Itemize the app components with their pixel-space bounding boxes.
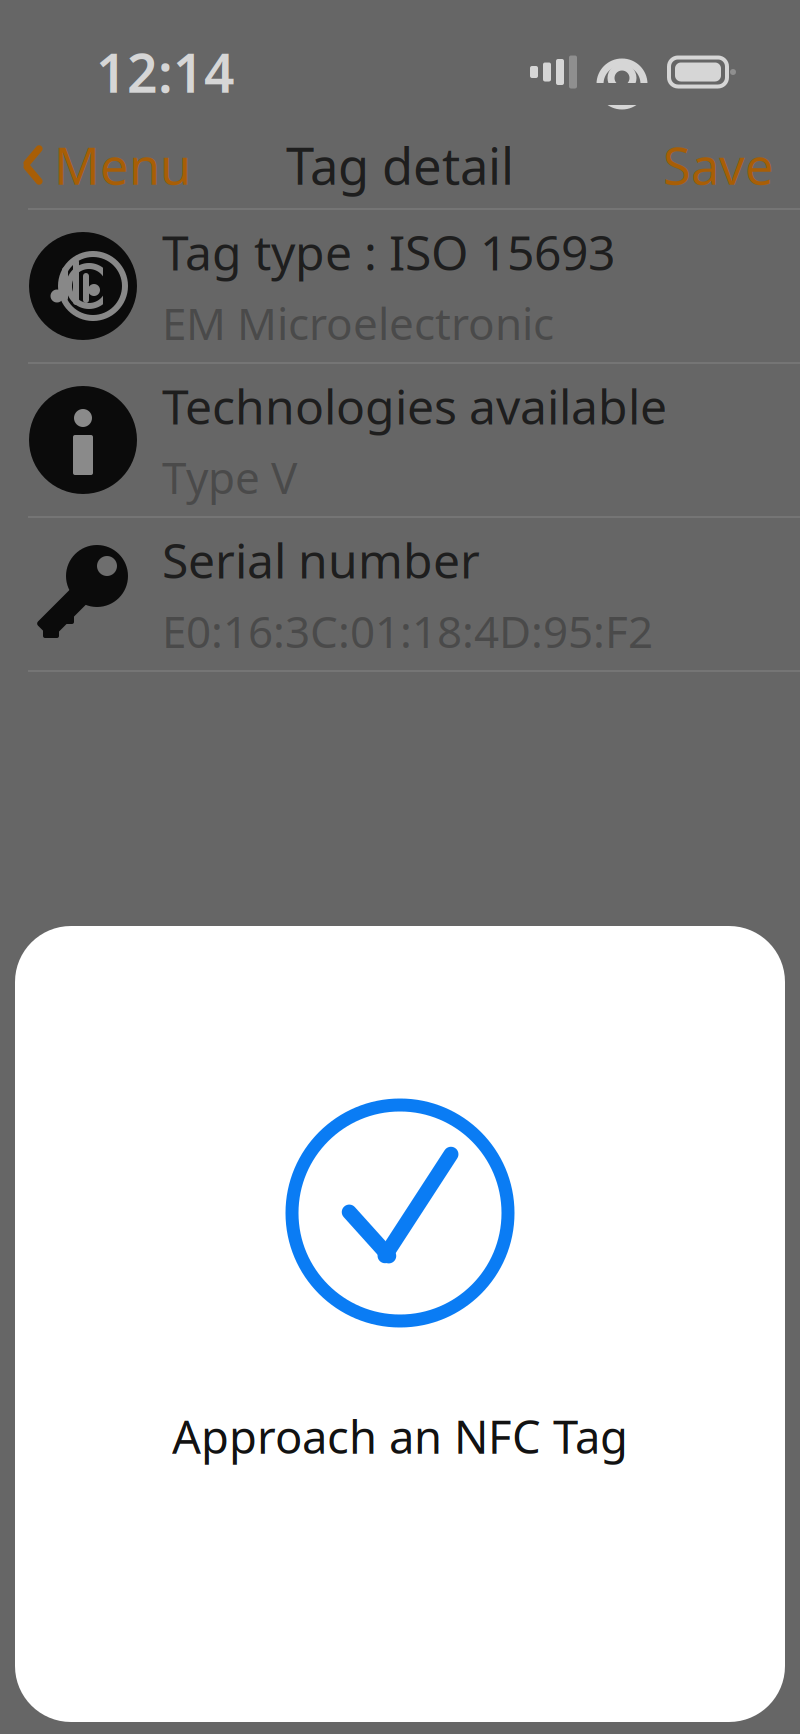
staticText: Approach an NFC Tag: [172, 1406, 628, 1466]
staticText: 12:14: [96, 37, 235, 107]
staticText: E0:16:3C:01:18:4D:95:F2: [162, 602, 653, 660]
button[interactable]: Tag type : ISO 15693: [0, 210, 800, 362]
staticText: Serial number: [162, 528, 480, 592]
staticText: Type V: [162, 448, 297, 506]
staticText: EM Microelectronic: [162, 294, 554, 352]
staticText: Tag type : ISO 15693: [162, 220, 615, 284]
button[interactable]: Technologies available: [0, 364, 800, 516]
staticText: Technologies available: [162, 374, 667, 438]
button[interactable]: Menu: [0, 117, 213, 213]
staticText: Menu: [54, 131, 191, 199]
button[interactable]: Save: [637, 117, 800, 213]
staticText: Save: [663, 131, 774, 199]
button[interactable]: Serial number: [0, 518, 800, 670]
staticText: Tag detail: [286, 131, 514, 199]
